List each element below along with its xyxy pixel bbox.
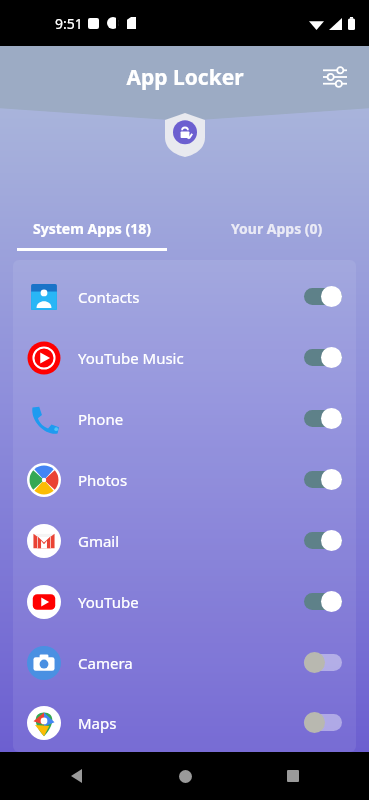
staticText: YouTube	[78, 592, 139, 612]
staticText: YouTube Music	[78, 348, 184, 368]
button[interactable]: YouTube	[13, 571, 356, 632]
button[interactable]: Settings	[315, 57, 355, 97]
button[interactable]: Contacts	[13, 266, 356, 327]
staticText: Phone	[78, 409, 124, 429]
button[interactable]: Phone	[13, 388, 356, 449]
button[interactable]: Lock enabled	[304, 469, 342, 490]
staticText: System Apps (18)	[33, 219, 152, 238]
button[interactable]: Photos	[13, 449, 356, 510]
button[interactable]: YouTube Music	[13, 327, 356, 388]
staticText: Gmail	[78, 531, 120, 551]
button[interactable]: Camera	[13, 632, 356, 693]
staticText: Camera	[78, 653, 133, 673]
button[interactable]: Back	[58, 758, 94, 794]
button[interactable]: Lock enabled	[304, 286, 342, 307]
staticText: 9:51	[55, 14, 83, 33]
button[interactable]: Gmail	[13, 510, 356, 571]
staticText: App Locker	[126, 63, 244, 92]
staticText: Photos	[78, 470, 128, 490]
button[interactable]: Lock enabled	[304, 408, 342, 429]
button[interactable]: Lock disabled	[304, 652, 342, 673]
staticText: Your Apps (0)	[231, 219, 323, 238]
button[interactable]: Recent apps	[275, 758, 311, 794]
button[interactable]: Maps	[13, 693, 356, 752]
button[interactable]: Your Apps (0)	[184, 209, 369, 260]
staticText: Maps	[78, 713, 117, 733]
staticText: Contacts	[78, 287, 140, 307]
button[interactable]: Lock enabled	[304, 347, 342, 368]
button[interactable]: Lock enabled	[304, 530, 342, 551]
button[interactable]: Lock enabled	[304, 591, 342, 612]
button[interactable]: System Apps (18)	[0, 209, 184, 260]
button[interactable]: Home	[167, 758, 203, 794]
button[interactable]: Lock disabled	[304, 712, 342, 733]
